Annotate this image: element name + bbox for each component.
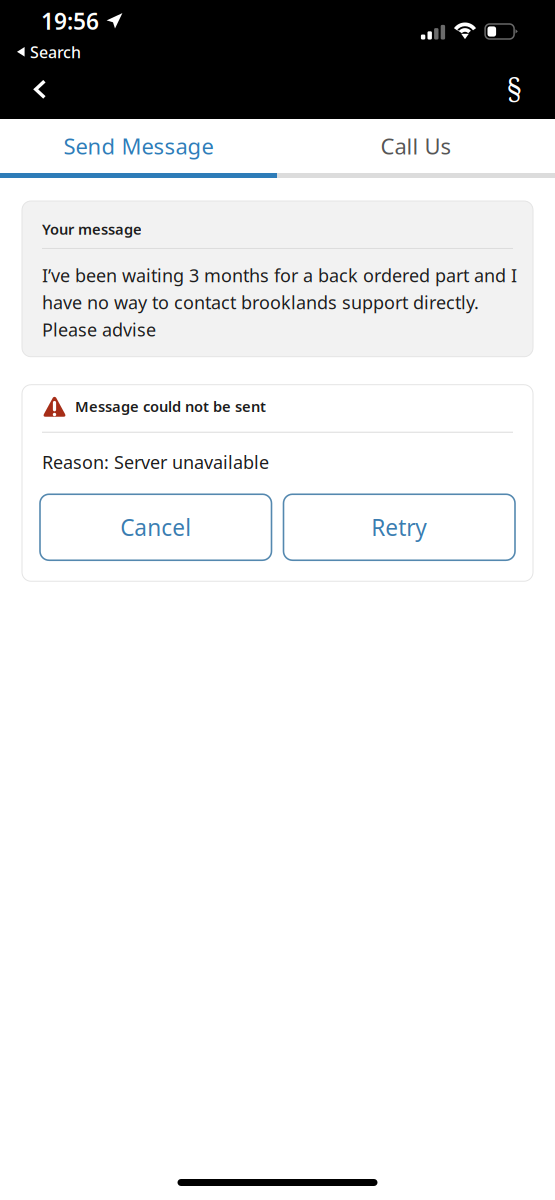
staticText: § (506, 67, 522, 107)
staticText: Reason: Server unavailable (42, 450, 269, 474)
button[interactable]: Call Us (277, 119, 555, 173)
staticText: Search (30, 41, 81, 63)
button[interactable]: Send Message (0, 119, 277, 173)
staticText: Message could not be sent (75, 396, 266, 416)
staticText: 19:56 (41, 6, 99, 36)
staticText: Retry (371, 512, 427, 543)
staticText: Call Us (380, 131, 451, 161)
button[interactable]: Retry (283, 494, 515, 560)
staticText: Your message (42, 219, 142, 239)
button[interactable]: Section (488, 66, 540, 118)
staticText: Send Message (63, 131, 213, 161)
staticText: Cancel (120, 512, 191, 543)
button[interactable]: Back (14, 66, 66, 118)
staticText: I’ve been waiting 3 months for a back or… (42, 263, 517, 342)
button[interactable]: Cancel (40, 494, 271, 560)
